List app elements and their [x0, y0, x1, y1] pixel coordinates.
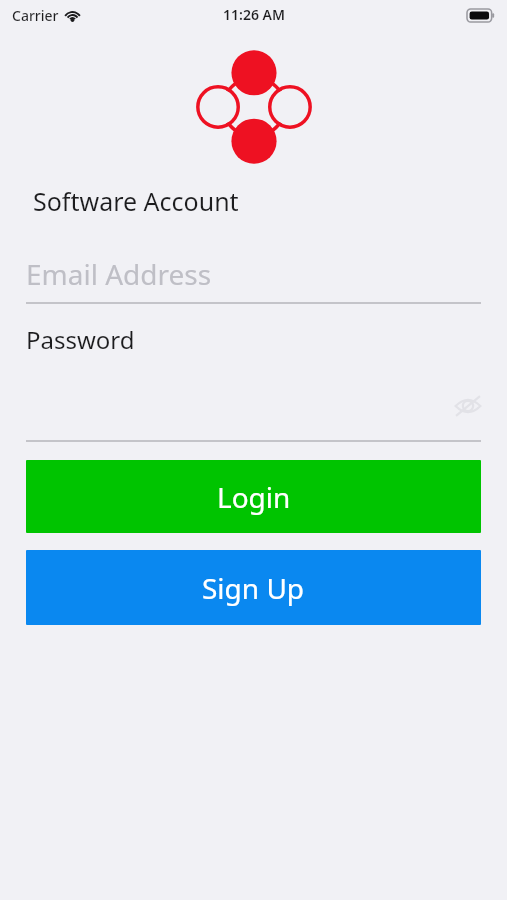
- staticText: Software Account: [33, 184, 239, 218]
- staticText: Email Address: [26, 255, 212, 293]
- staticText: Carrier: [12, 6, 59, 25]
- button[interactable]: Password: [26, 315, 481, 441]
- button[interactable]: Email Address: [26, 244, 481, 303]
- staticText: 11:26 AM: [223, 5, 285, 24]
- other: App logo: [192, 48, 316, 166]
- staticText: Login: [217, 478, 291, 516]
- button[interactable]: Login: [26, 460, 481, 533]
- staticText: Sign Up: [202, 569, 305, 607]
- button[interactable]: Sign Up: [26, 550, 481, 625]
- staticText: Password: [26, 323, 135, 356]
- button[interactable]: Show password: [448, 388, 488, 424]
